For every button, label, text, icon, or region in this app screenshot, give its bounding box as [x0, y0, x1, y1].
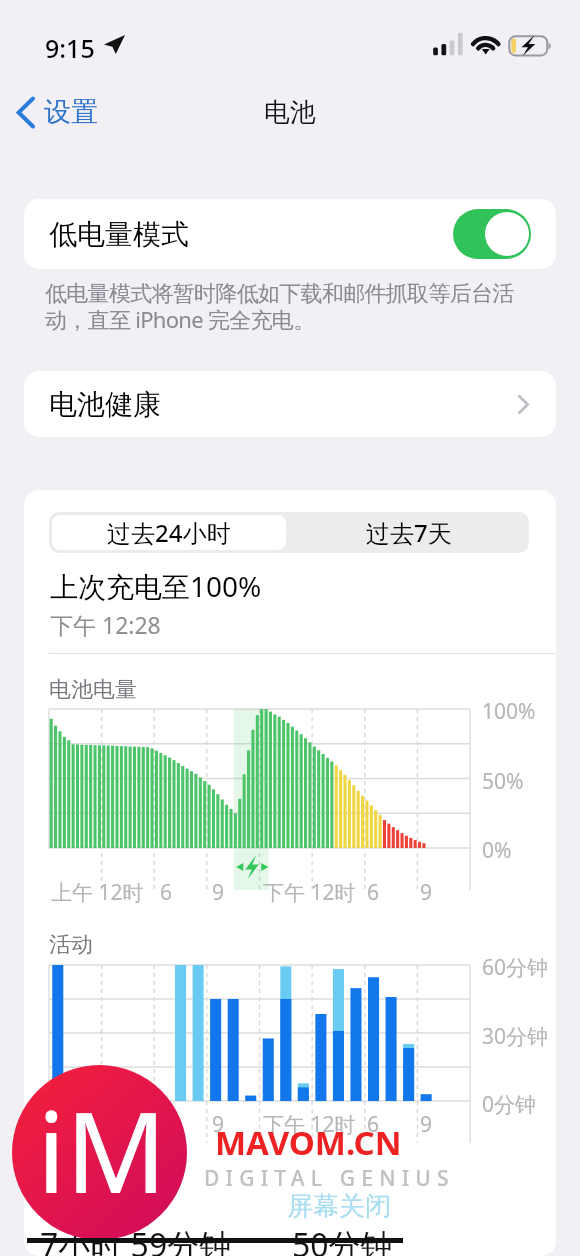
- staticText: 6: [367, 1110, 380, 1139]
- button[interactable]: 过去7天: [289, 512, 529, 553]
- staticText: iM: [37, 1074, 167, 1225]
- staticText: 过去7天: [366, 516, 452, 549]
- staticText: 设置: [44, 95, 98, 129]
- staticText: 60分钟: [482, 953, 549, 982]
- staticText: 电池健康: [49, 387, 161, 422]
- staticText: 电池: [264, 96, 316, 129]
- staticText: 0分钟: [482, 1090, 537, 1119]
- staticText: 低电量模式将暂时降低如下载和邮件抓取等后台活动，直至 iPhone 完全充电。: [45, 280, 525, 334]
- staticText: 30分钟: [482, 1022, 549, 1051]
- staticText: 50%: [482, 767, 524, 796]
- button[interactable]: 低电量模式: [24, 199, 556, 269]
- staticText: 上午 12时: [51, 878, 144, 907]
- staticText: 9:15: [45, 31, 95, 65]
- staticText: 9: [420, 878, 433, 907]
- staticText: 上午 12时: [51, 1110, 144, 1139]
- staticText: MAVOM.CN: [215, 1120, 402, 1165]
- staticText: 活动: [49, 931, 93, 959]
- staticText: 下午 12时: [263, 1110, 356, 1139]
- staticText: 6: [160, 878, 173, 907]
- staticText: 屏幕关闭: [287, 1190, 391, 1223]
- staticText: 6: [367, 878, 380, 907]
- staticText: 100%: [482, 697, 536, 726]
- staticText: 电池电量: [49, 676, 137, 704]
- staticText: 下午 12时: [263, 878, 356, 907]
- staticText: 9: [212, 1110, 225, 1139]
- other: 定位: [104, 35, 125, 54]
- staticText: DIGITAL GENIUS: [204, 1164, 455, 1193]
- staticText: 9: [212, 878, 225, 907]
- button[interactable]: 设置: [8, 86, 138, 138]
- staticText: 7小时 59分钟: [40, 1223, 232, 1256]
- staticText: 低电量模式: [49, 217, 189, 252]
- staticText: 50分钟: [292, 1223, 393, 1256]
- button[interactable]: 低电量模式开关: [453, 209, 531, 259]
- staticText: 上次充电至100%: [50, 567, 262, 605]
- staticText: 下午 12:28: [50, 609, 161, 640]
- button[interactable]: 过去24小时: [52, 515, 286, 550]
- staticText: 0%: [482, 836, 512, 865]
- button[interactable]: 电池健康: [24, 371, 556, 437]
- staticText: 9: [420, 1110, 433, 1139]
- staticText: 过去24小时: [107, 516, 231, 549]
